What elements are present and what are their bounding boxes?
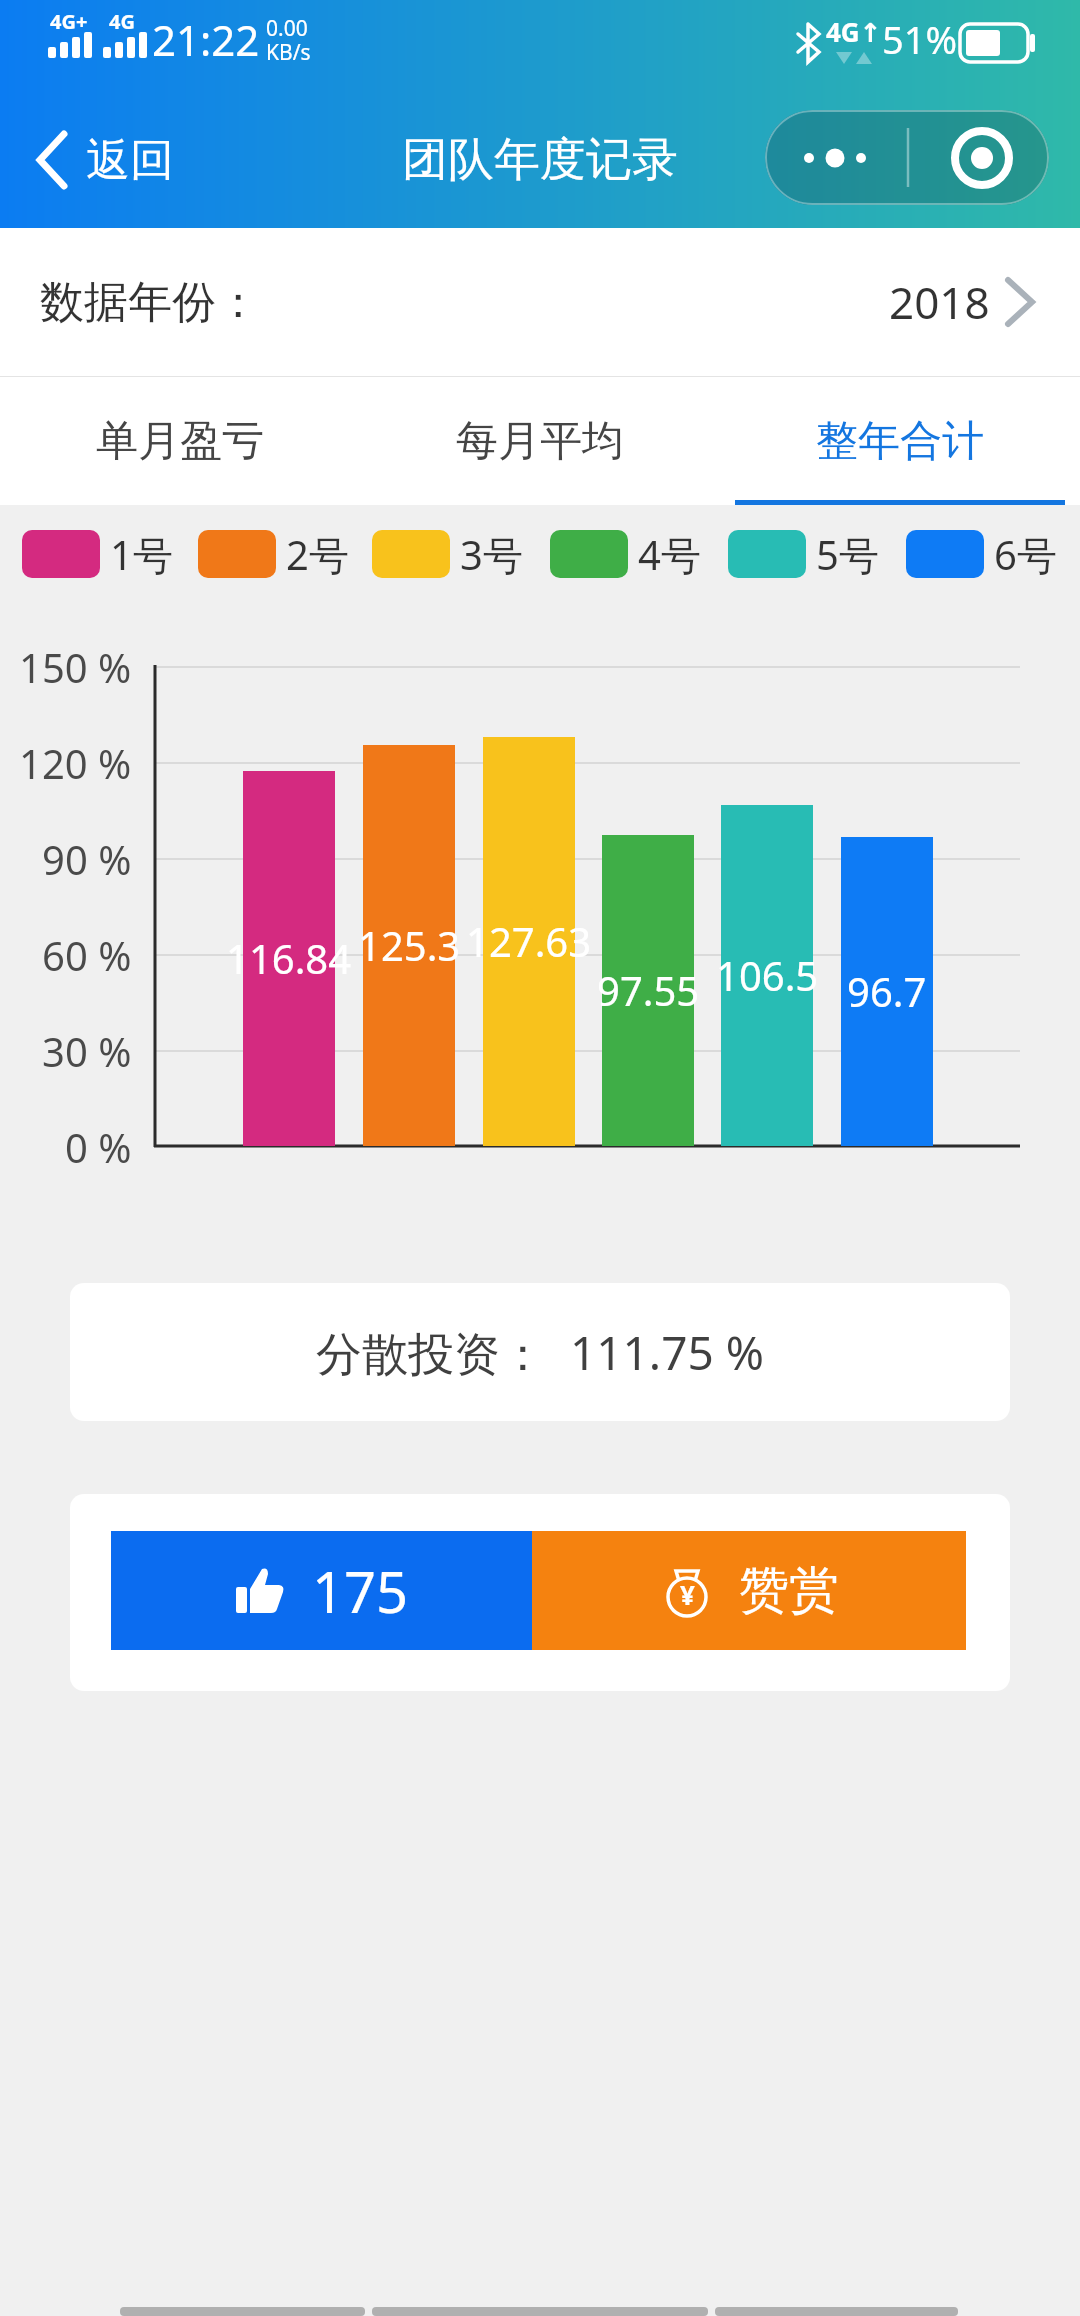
staticText: 1号 [110,527,173,582]
staticText: 3号 [460,527,523,582]
staticText: ¥ [680,1577,695,1612]
button[interactable]: 单月盈亏 [0,377,360,505]
staticText: 96.7 [847,964,927,1018]
staticText: 175 [312,1553,409,1629]
staticText: 4G [109,8,135,34]
button[interactable]: 整年合计 [720,377,1080,505]
staticText: 125.3 [358,918,461,972]
staticText: 每月平均 [456,415,624,468]
staticText: 6号 [994,527,1057,582]
staticText: 返回 [86,133,174,188]
button[interactable]: ¥ [532,1531,966,1650]
staticText: 30 % [42,1024,132,1078]
staticText: 116.84 [226,931,352,985]
staticText: 0 % [65,1120,132,1174]
staticText: 120 % [19,736,132,790]
staticText: 106.5 [716,948,819,1002]
staticText: 4G+ [50,8,88,34]
staticText: 分散投资： 111.75 % [316,1321,764,1384]
staticText: 2018 [889,272,990,332]
staticText: 0.00 [266,14,308,40]
button[interactable]: 返回 [86,130,186,190]
staticText: 2号 [286,527,349,582]
staticText: 4G↑ [826,14,882,49]
staticText: 60 % [42,928,132,982]
staticText: 4号 [638,527,701,582]
staticText: 赞赏 [739,1559,839,1622]
staticText: 150 % [19,640,132,694]
button[interactable]: 175 [111,1531,532,1650]
staticText: 单月盈亏 [96,415,264,468]
staticText: KB/s [266,38,311,64]
staticText: 90 % [42,832,132,886]
button[interactable]: 数据年份： [0,228,1080,376]
staticText: 97.55 [597,963,700,1017]
staticText: 51% [882,13,958,65]
staticText: 团队年度记录 [402,131,678,189]
staticText: 数据年份： [40,275,260,330]
button[interactable] [765,110,1049,205]
staticText: 整年合计 [816,415,984,468]
staticText: 5号 [816,527,879,582]
staticText: 127.63 [466,914,592,968]
staticText: 21:22 [152,11,260,68]
button[interactable]: 每月平均 [360,377,720,505]
